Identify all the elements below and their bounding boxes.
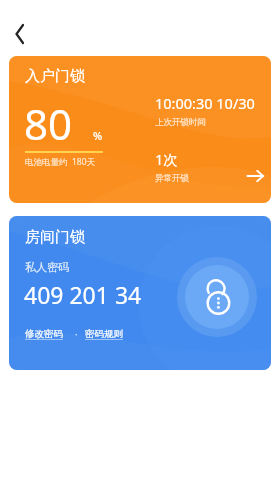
staticText: 上次开锁时间 — [155, 117, 206, 128]
staticText: 电池电量约 180天 — [25, 156, 96, 168]
staticText: 私人密码 — [25, 260, 69, 274]
staticText: 10:00:30 10/30 — [155, 93, 255, 113]
staticText: 1次 — [155, 149, 178, 169]
button[interactable]: 密码规则 — [83, 326, 121, 338]
button[interactable]: More details — [243, 164, 267, 188]
staticText: 修改密码 — [25, 328, 63, 340]
button[interactable]: 修改密码 — [23, 326, 61, 338]
staticText: 异常开锁 — [155, 173, 189, 184]
staticText: 入户门锁 — [25, 67, 85, 86]
staticText: 409 201 34 — [24, 279, 142, 310]
staticText: % — [93, 128, 103, 143]
button[interactable]: 房间门锁 — [9, 216, 271, 370]
button[interactable]: 入户门锁 — [9, 56, 271, 203]
staticText: · — [75, 328, 78, 341]
staticText: 房间门锁 — [25, 228, 85, 247]
button[interactable]: Back — [2, 16, 38, 52]
staticText: 密码规则 — [85, 328, 123, 340]
button[interactable]: Unlock door — [177, 257, 257, 337]
staticText: 80 — [24, 95, 73, 152]
